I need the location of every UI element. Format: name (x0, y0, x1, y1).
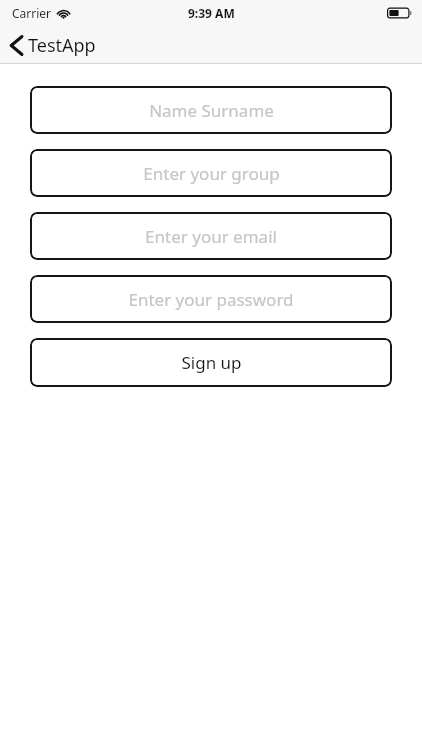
button[interactable]: Name Surname (30, 86, 392, 134)
other: Back (10, 35, 23, 56)
staticText: Enter your group (143, 162, 280, 185)
staticText: Enter your email (145, 225, 277, 248)
button[interactable]: Enter your group (30, 149, 392, 197)
staticText: Enter your password (128, 288, 294, 311)
staticText: Name Surname (149, 99, 274, 122)
button[interactable]: Enter your email (30, 212, 392, 260)
button[interactable]: Back (0, 29, 106, 62)
staticText: TestApp (28, 33, 96, 58)
staticText: Sign up (181, 351, 242, 374)
button[interactable]: Sign up (30, 338, 392, 387)
button[interactable]: Enter your password (30, 275, 392, 323)
staticText: 9:39 AM (188, 5, 235, 21)
staticText: Carrier (12, 5, 52, 21)
